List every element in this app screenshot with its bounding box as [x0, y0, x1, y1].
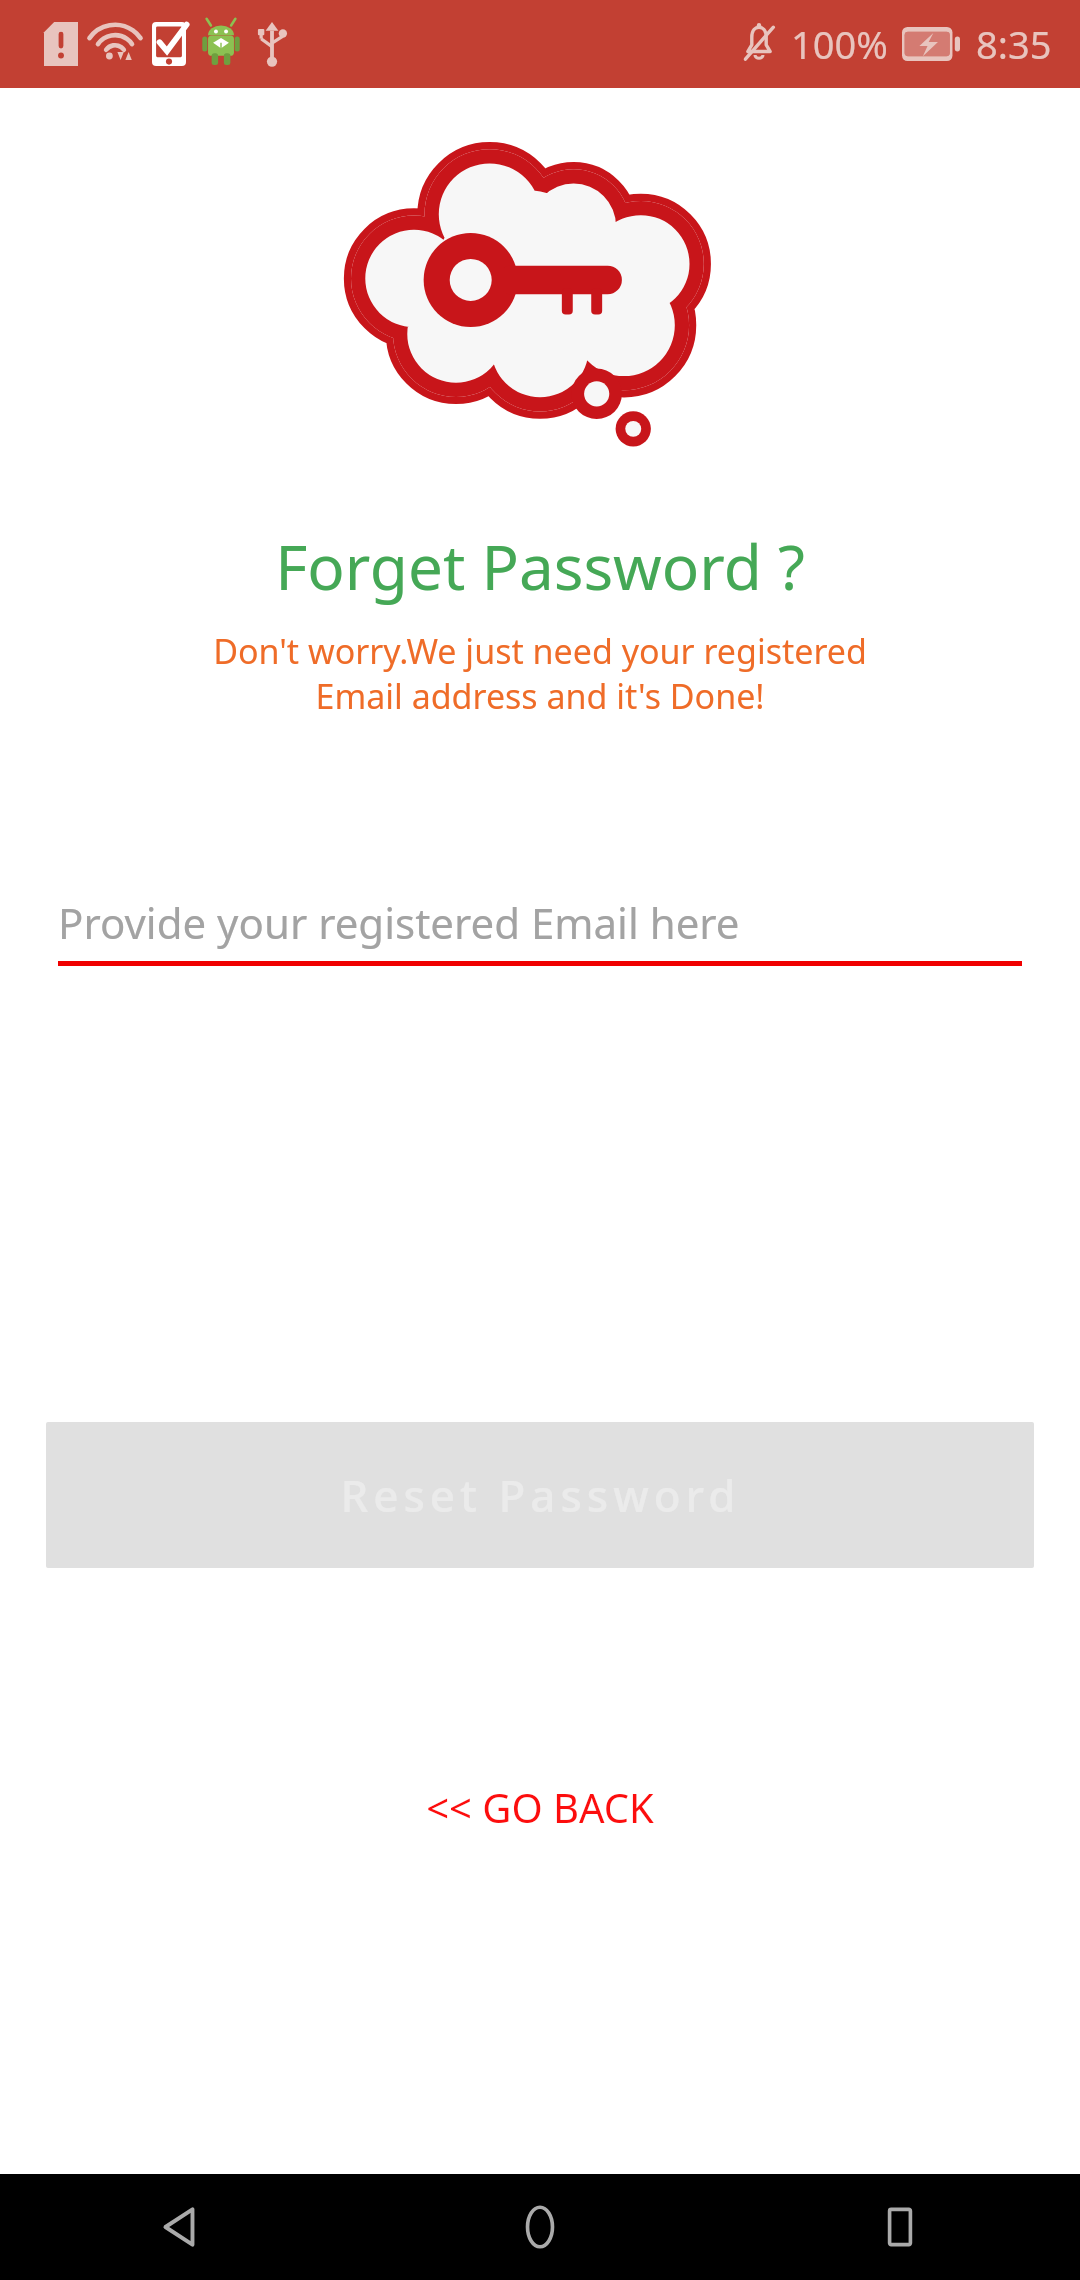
button[interactable]: Recents: [720, 2174, 1080, 2280]
staticText: << GO BACK: [426, 1780, 654, 1834]
staticText: Don't worry.We just need your registered…: [213, 628, 867, 718]
staticText: Reset Password: [340, 1465, 741, 1525]
staticText: Forget Password ?: [275, 524, 805, 608]
button[interactable]: << GO BACK: [396, 1764, 684, 1850]
staticText: Provide your registered Email here: [58, 894, 1022, 951]
button[interactable]: Home: [360, 2174, 720, 2280]
button[interactable]: Back: [0, 2174, 360, 2280]
staticText: 100%: [791, 18, 888, 70]
button[interactable]: Provide your registered Email here: [58, 894, 1022, 966]
staticText: 8:35: [976, 18, 1052, 70]
